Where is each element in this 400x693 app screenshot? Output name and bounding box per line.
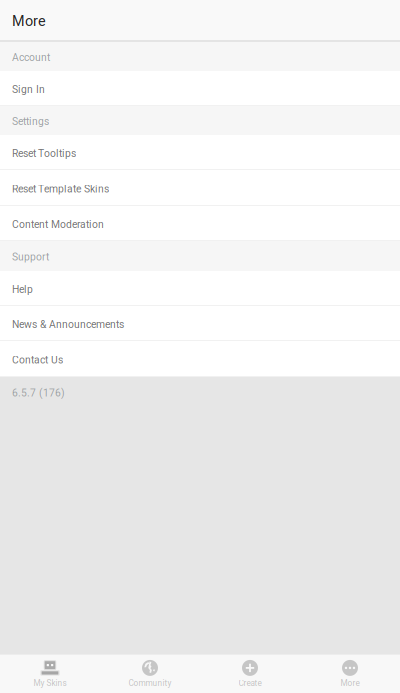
staticText: Content Moderation xyxy=(12,218,104,230)
button[interactable]: Community xyxy=(100,655,200,693)
staticText: Sign In xyxy=(12,83,45,95)
staticText: Support xyxy=(12,251,49,263)
staticText: More xyxy=(340,678,359,688)
staticText: Account xyxy=(12,51,50,63)
button[interactable]: Create xyxy=(200,655,300,693)
staticText: 6.5.7 (176) xyxy=(12,387,65,399)
staticText: My Skins xyxy=(33,678,66,688)
button[interactable]: My Skins xyxy=(0,655,100,693)
staticText: News & Announcements xyxy=(12,318,124,330)
button[interactable]: Reset Tooltips xyxy=(0,135,400,170)
staticText: Create xyxy=(238,678,261,688)
button[interactable]: News & Announcements xyxy=(0,306,400,341)
button[interactable]: Contact Us xyxy=(0,341,400,377)
staticText: Settings xyxy=(12,115,49,127)
button[interactable]: Reset Template Skins xyxy=(0,170,400,206)
staticText: Help xyxy=(12,283,33,295)
staticText: Community xyxy=(128,678,171,688)
button[interactable]: Content Moderation xyxy=(0,206,400,241)
button[interactable]: Sign In xyxy=(0,71,400,106)
staticText: Contact Us xyxy=(12,354,63,366)
staticText: Reset Template Skins xyxy=(12,183,109,195)
button[interactable]: More xyxy=(300,655,400,693)
staticText: Reset Tooltips xyxy=(12,147,76,159)
staticText: More xyxy=(12,13,46,29)
button[interactable]: Help xyxy=(0,271,400,306)
